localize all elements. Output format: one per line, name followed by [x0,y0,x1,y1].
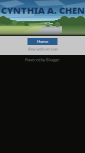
staticText: CYNTHIA A. CHEN [1,4,85,16]
button[interactable]: Home [27,38,57,45]
button[interactable]: View web version [0,46,85,52]
staticText: Home [37,39,48,44]
staticText: View web version [27,46,57,52]
staticText: Powered by Blogger [25,57,60,62]
